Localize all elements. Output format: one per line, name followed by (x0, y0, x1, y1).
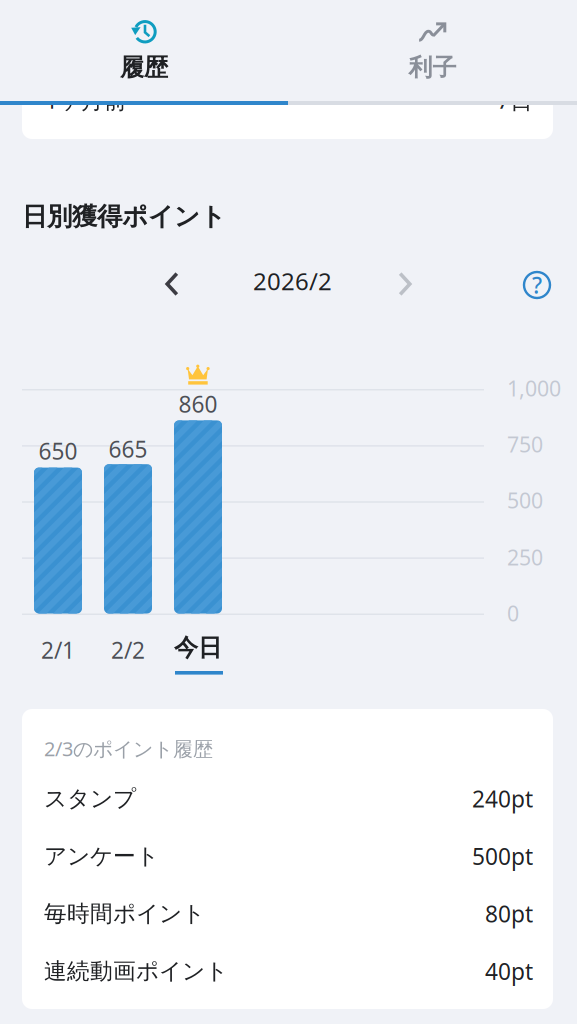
staticText: 750 (507, 430, 543, 458)
button[interactable]: 毎時間ポイント (44, 885, 533, 942)
staticText: アンケート (44, 842, 159, 870)
staticText: 665 (108, 434, 147, 464)
staticText: 240pt (472, 784, 533, 814)
staticText: 2/3のポイント履歴 (44, 735, 213, 762)
staticText: 1ヶ月前 (45, 85, 127, 115)
button[interactable]: 利子 (288, 0, 577, 101)
staticText: 毎時間ポイント (44, 900, 205, 928)
staticText: 860 (178, 389, 217, 419)
button[interactable]: 1ヶ月前 (45, 85, 533, 115)
button[interactable]: Previous month (164, 271, 180, 297)
button[interactable]: Next month (397, 271, 413, 297)
button[interactable]: 履歴 (0, 0, 288, 101)
staticText: ? (532, 270, 542, 300)
staticText: 2/1 (41, 635, 75, 665)
staticText: 2/2 (111, 635, 145, 665)
staticText: 650 (38, 436, 77, 466)
staticText: 500pt (472, 841, 533, 871)
staticText: 日別獲得ポイント (22, 201, 226, 232)
staticText: 2026/2 (253, 265, 332, 297)
staticText: スタンプ (44, 785, 136, 813)
staticText: 今日 (174, 633, 222, 662)
staticText: 履歴 (120, 53, 168, 82)
staticText: 40pt (485, 956, 533, 986)
staticText: 7日 (497, 85, 533, 115)
staticText: 連続動画ポイント (44, 957, 228, 985)
button[interactable]: アンケート (44, 827, 533, 885)
staticText: 80pt (485, 899, 533, 929)
staticText: 0 (507, 599, 519, 627)
staticText: 利子 (408, 53, 456, 82)
staticText: 500 (507, 486, 543, 514)
button[interactable]: Help (522, 270, 552, 300)
staticText: 1,000 (507, 374, 561, 402)
button[interactable]: 連続動画ポイント (44, 942, 533, 1000)
staticText: 250 (507, 543, 543, 571)
button[interactable]: スタンプ (44, 770, 533, 827)
